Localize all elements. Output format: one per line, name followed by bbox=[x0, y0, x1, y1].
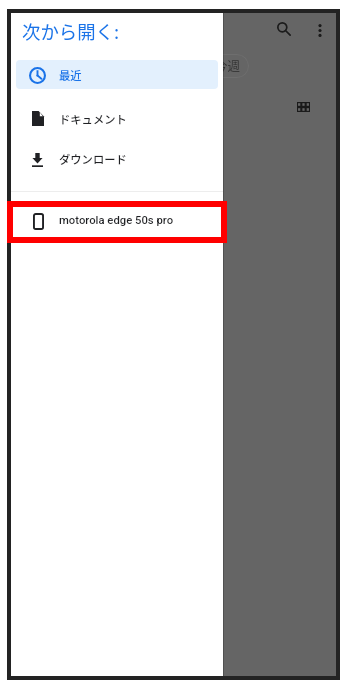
staticText: 次から開く: bbox=[22, 18, 120, 45]
button[interactable]: Search bbox=[265, 10, 303, 48]
button[interactable]: ドキュメント bbox=[16, 104, 218, 133]
button[interactable]: 最近 bbox=[16, 60, 218, 89]
staticText: ダウンロード bbox=[59, 151, 127, 167]
staticText: 今週 bbox=[215, 56, 241, 74]
button[interactable]: motorola edge 50s pro bbox=[16, 206, 218, 235]
button[interactable]: More options bbox=[301, 11, 339, 49]
staticText: ドキュメント bbox=[59, 111, 127, 127]
staticText: 最近 bbox=[59, 67, 82, 83]
button[interactable]: Grid view bbox=[286, 90, 320, 124]
button[interactable]: 今週 bbox=[207, 54, 249, 78]
button[interactable]: ダウンロード bbox=[16, 144, 218, 173]
staticText: motorola edge 50s pro bbox=[59, 214, 174, 227]
